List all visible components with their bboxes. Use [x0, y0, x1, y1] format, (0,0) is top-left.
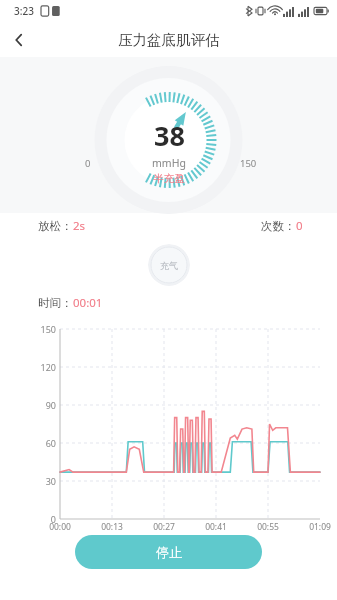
- staticText: 充气: [160, 260, 178, 271]
- staticText: 00:01: [73, 295, 103, 311]
- staticText: 00:41: [200, 521, 232, 533]
- staticText: 停止: [156, 544, 182, 560]
- staticText: 01:09: [304, 521, 336, 533]
- button[interactable]: Back: [0, 22, 38, 57]
- staticText: 120: [30, 361, 56, 373]
- staticText: 150: [30, 323, 56, 335]
- staticText: 38: [154, 117, 185, 154]
- staticText: 00:27: [148, 521, 180, 533]
- staticText: 3:23: [14, 4, 34, 18]
- staticText: 90: [30, 399, 56, 411]
- button[interactable]: 停止: [75, 535, 262, 569]
- staticText: 压力盆底肌评估: [118, 31, 220, 49]
- staticText: 2s: [73, 218, 86, 234]
- staticText: 30: [30, 475, 56, 487]
- staticText: 0: [296, 218, 303, 234]
- staticText: 时间：: [38, 296, 73, 310]
- staticText: 00:00: [44, 521, 76, 533]
- button[interactable]: 充气: [148, 244, 190, 286]
- staticText: 00:55: [252, 521, 284, 533]
- staticText: 60: [30, 437, 56, 449]
- staticText: 半充盈: [153, 172, 185, 185]
- staticText: mmHg: [152, 156, 186, 170]
- staticText: 0: [85, 157, 91, 170]
- staticText: 次数：: [261, 219, 296, 233]
- staticText: 0: [30, 513, 56, 525]
- staticText: 00:13: [96, 521, 128, 533]
- staticText: 放松：: [38, 219, 73, 233]
- staticText: 150: [240, 157, 257, 170]
